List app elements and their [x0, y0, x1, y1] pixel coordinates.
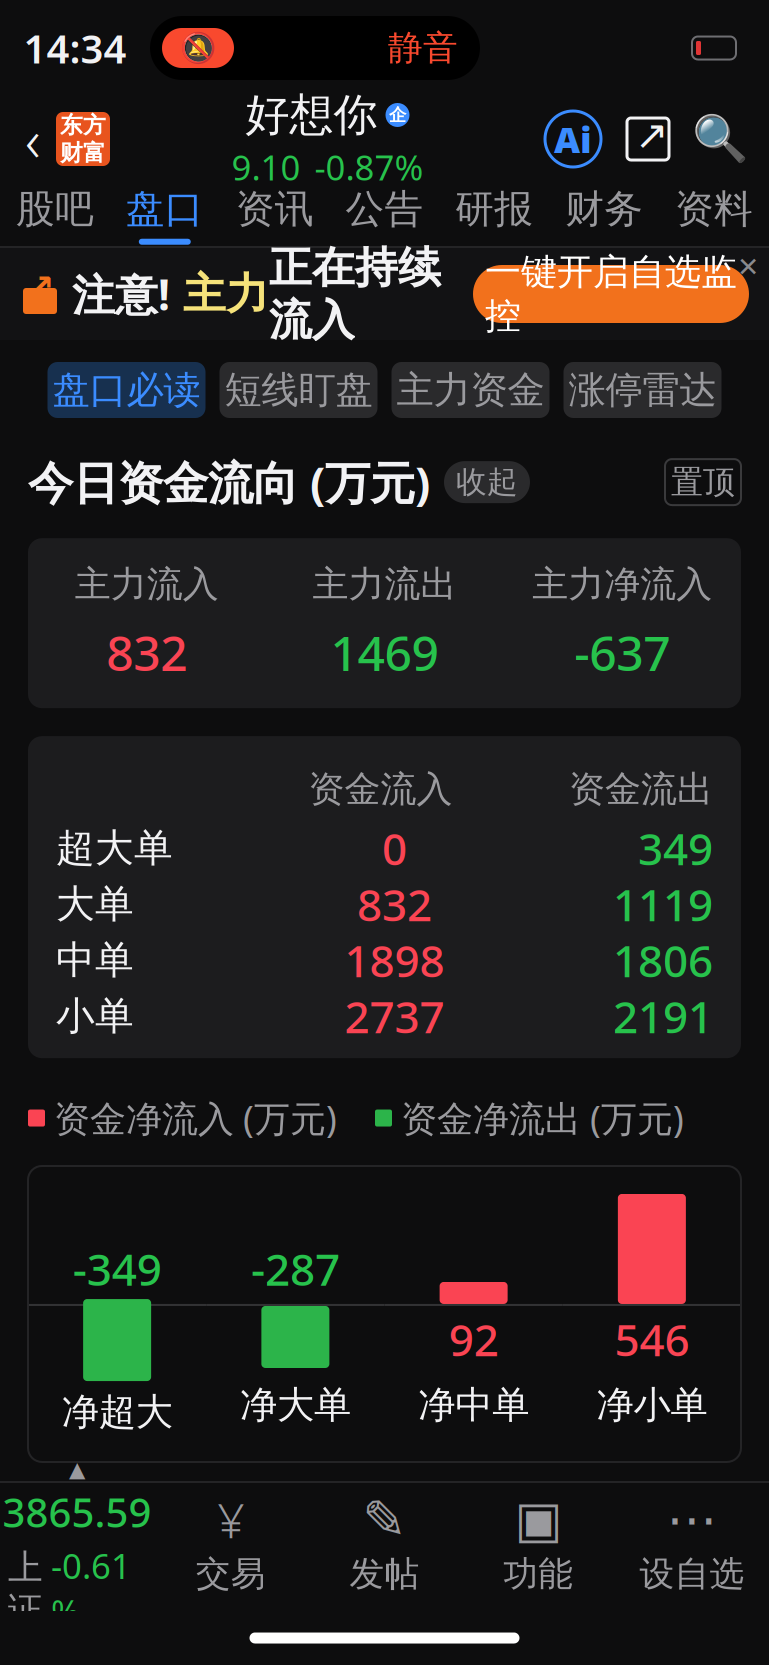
- button[interactable]: 财务: [549, 184, 659, 246]
- staticText: 🔍: [692, 113, 748, 165]
- staticText: 公告: [345, 185, 423, 233]
- staticText: 短线盯盘: [224, 367, 372, 413]
- button[interactable]: 关闭: [731, 250, 765, 284]
- button[interactable]: 盘口必读: [47, 362, 205, 418]
- staticText: 9.10: [231, 144, 300, 190]
- staticText: -287: [251, 1239, 340, 1298]
- staticText: ¥: [217, 1488, 244, 1551]
- button[interactable]: 一键开启自选监控: [473, 265, 749, 323]
- staticText: ↗: [25, 267, 54, 307]
- button[interactable]: ✎: [308, 1491, 461, 1601]
- staticText: 收起: [456, 463, 518, 501]
- staticText: 财务: [565, 185, 643, 233]
- staticText: ‹: [25, 100, 41, 178]
- button[interactable]: 上证指数: [0, 1481, 154, 1611]
- staticText: 1806: [613, 931, 713, 989]
- staticText: 股吧: [16, 185, 94, 233]
- staticText: 超大单: [56, 824, 173, 872]
- staticText: 🔕: [179, 31, 216, 65]
- button[interactable]: 置顶: [665, 459, 741, 505]
- button[interactable]: 搜索: [695, 113, 745, 165]
- staticText: 832: [106, 620, 187, 684]
- staticText: 资金流入: [308, 767, 452, 811]
- button[interactable]: 收起: [444, 461, 530, 503]
- staticText: -0.61%: [51, 1543, 131, 1635]
- button[interactable]: 涨停雷达: [563, 362, 721, 418]
- button[interactable]: 短线盯盘: [219, 362, 377, 418]
- staticText: 小单: [56, 992, 134, 1040]
- staticText: 大单: [56, 880, 134, 928]
- staticText: ↗: [635, 112, 669, 158]
- staticText: 349: [638, 819, 713, 877]
- staticText: ✎: [362, 1489, 407, 1550]
- staticText: 置顶: [671, 462, 735, 502]
- staticText: 收起: [490, 1561, 552, 1599]
- staticText: 1469: [330, 620, 438, 684]
- button[interactable]: 资料: [659, 184, 769, 246]
- button[interactable]: 研报: [439, 184, 549, 246]
- button[interactable]: 置顶: [665, 1557, 741, 1603]
- button[interactable]: AI 助手: [545, 111, 601, 167]
- staticText: 净中单: [418, 1382, 529, 1428]
- staticText: 主力流出: [312, 562, 456, 606]
- staticText: 14:34: [23, 21, 126, 74]
- staticText: 中单: [56, 936, 134, 984]
- staticText: 净小单: [596, 1382, 707, 1428]
- staticText: Ai: [554, 115, 592, 163]
- button[interactable]: 股吧: [0, 184, 110, 246]
- button[interactable]: 分享: [623, 113, 673, 165]
- staticText: 东方: [60, 111, 106, 139]
- button[interactable]: ▣: [461, 1491, 615, 1601]
- button[interactable]: 收起: [478, 1559, 564, 1601]
- staticText: 主力净流入: [532, 562, 712, 606]
- staticText: -637: [574, 620, 670, 684]
- staticText: 财富: [60, 139, 106, 167]
- staticText: 92: [449, 1310, 499, 1368]
- staticText: 2737: [344, 987, 444, 1045]
- button[interactable]: 东方财富: [56, 112, 110, 166]
- button[interactable]: 盘口: [110, 184, 220, 246]
- staticText: 主力流入: [75, 562, 219, 606]
- button[interactable]: ¥: [154, 1491, 308, 1601]
- staticText: 资金净流入 (万元): [54, 1094, 337, 1142]
- staticText: 资金流出: [569, 767, 713, 811]
- staticText: 注意!: [72, 266, 170, 322]
- staticText: 交易: [196, 1553, 266, 1595]
- staticText: 1898: [344, 931, 444, 989]
- staticText: 好想你: [245, 88, 377, 142]
- staticText: 主力资金趋势 (万元): [28, 1550, 430, 1610]
- staticText: ⋯: [667, 1491, 718, 1548]
- staticText: 净大单: [240, 1382, 351, 1428]
- staticText: ▲: [69, 1457, 85, 1481]
- staticText: 盘口必读: [52, 367, 200, 413]
- staticText: ✕: [737, 252, 759, 282]
- staticText: 主力: [170, 268, 269, 320]
- staticText: 静音: [388, 27, 458, 69]
- staticText: 资讯: [236, 185, 314, 233]
- staticText: 置顶: [671, 1560, 735, 1600]
- staticText: 功能: [503, 1553, 573, 1595]
- staticText: 设自选: [640, 1553, 745, 1595]
- staticText: 3865.59: [2, 1485, 151, 1539]
- button[interactable]: 返回: [10, 111, 56, 167]
- staticText: 正在持续流入: [269, 242, 441, 346]
- staticText: -349: [73, 1239, 162, 1298]
- staticText: 上证: [8, 1546, 43, 1631]
- staticText: 盘口: [126, 185, 204, 233]
- staticText: 净超大: [62, 1389, 173, 1435]
- staticText: 主力资金: [396, 367, 544, 413]
- staticText: 2191: [613, 987, 713, 1045]
- staticText: 一键开启自选监控: [485, 250, 737, 338]
- staticText: 资料: [675, 185, 753, 233]
- staticText: 研报: [455, 185, 533, 233]
- staticText: 546: [614, 1310, 689, 1368]
- button[interactable]: 主力资金: [391, 362, 549, 418]
- button[interactable]: 公告: [330, 184, 439, 246]
- staticText: 发帖: [349, 1553, 419, 1595]
- staticText: 1119: [613, 875, 713, 933]
- button[interactable]: 资讯: [220, 184, 330, 246]
- button[interactable]: ⋯: [615, 1491, 769, 1601]
- staticText: 832: [357, 875, 432, 933]
- staticText: 0: [382, 819, 407, 877]
